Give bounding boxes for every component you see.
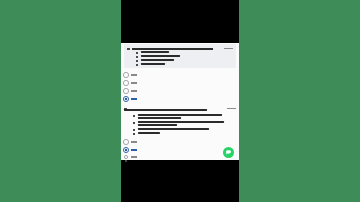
button[interactable]: [123, 96, 137, 102]
button[interactable]: Chat: [223, 147, 234, 158]
button[interactable]: [123, 72, 137, 78]
button[interactable]: [127, 46, 233, 66]
button[interactable]: [124, 106, 236, 134]
button[interactable]: [123, 88, 137, 94]
button[interactable]: [123, 147, 137, 153]
button[interactable]: [123, 80, 137, 86]
button[interactable]: [123, 155, 137, 159]
button[interactable]: [123, 139, 137, 145]
